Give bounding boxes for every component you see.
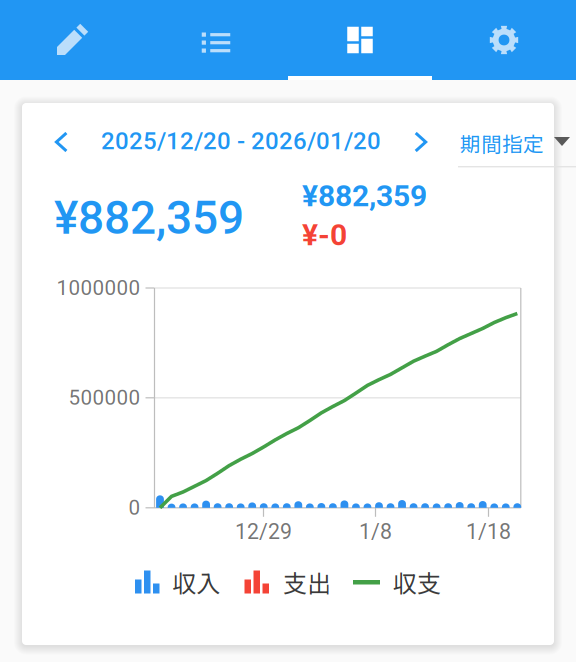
staticText: 期間指定 [460, 128, 544, 158]
staticText: 支出 [283, 565, 331, 599]
button[interactable]: 期間指定 [455, 124, 576, 176]
staticText: 1/8 [359, 519, 392, 544]
staticText: 0 [128, 496, 140, 520]
staticText: 1/18 [466, 519, 511, 544]
button[interactable]: 収入 [135, 565, 220, 599]
button[interactable]: Previous period [39, 120, 83, 164]
staticText: ¥-0 [302, 217, 347, 253]
staticText: ¥882,359 [302, 178, 427, 214]
staticText: ¥882,359 [54, 191, 244, 245]
staticText: 1000000 [56, 276, 140, 300]
button[interactable]: 支出 [244, 565, 331, 599]
staticText: 2025/12/20 - 2026/01/20 [101, 127, 381, 155]
button[interactable]: Next period [399, 120, 443, 164]
staticText: 収支 [393, 565, 441, 599]
staticText: 収入 [172, 565, 220, 599]
staticText: 12/29 [235, 519, 292, 544]
staticText: 500000 [68, 386, 140, 410]
button[interactable]: 収支 [353, 565, 441, 599]
button[interactable]: Settings [432, 0, 576, 80]
button[interactable]: Dashboard [288, 0, 432, 80]
button[interactable]: Records [144, 0, 288, 80]
button[interactable]: Input [0, 0, 144, 80]
